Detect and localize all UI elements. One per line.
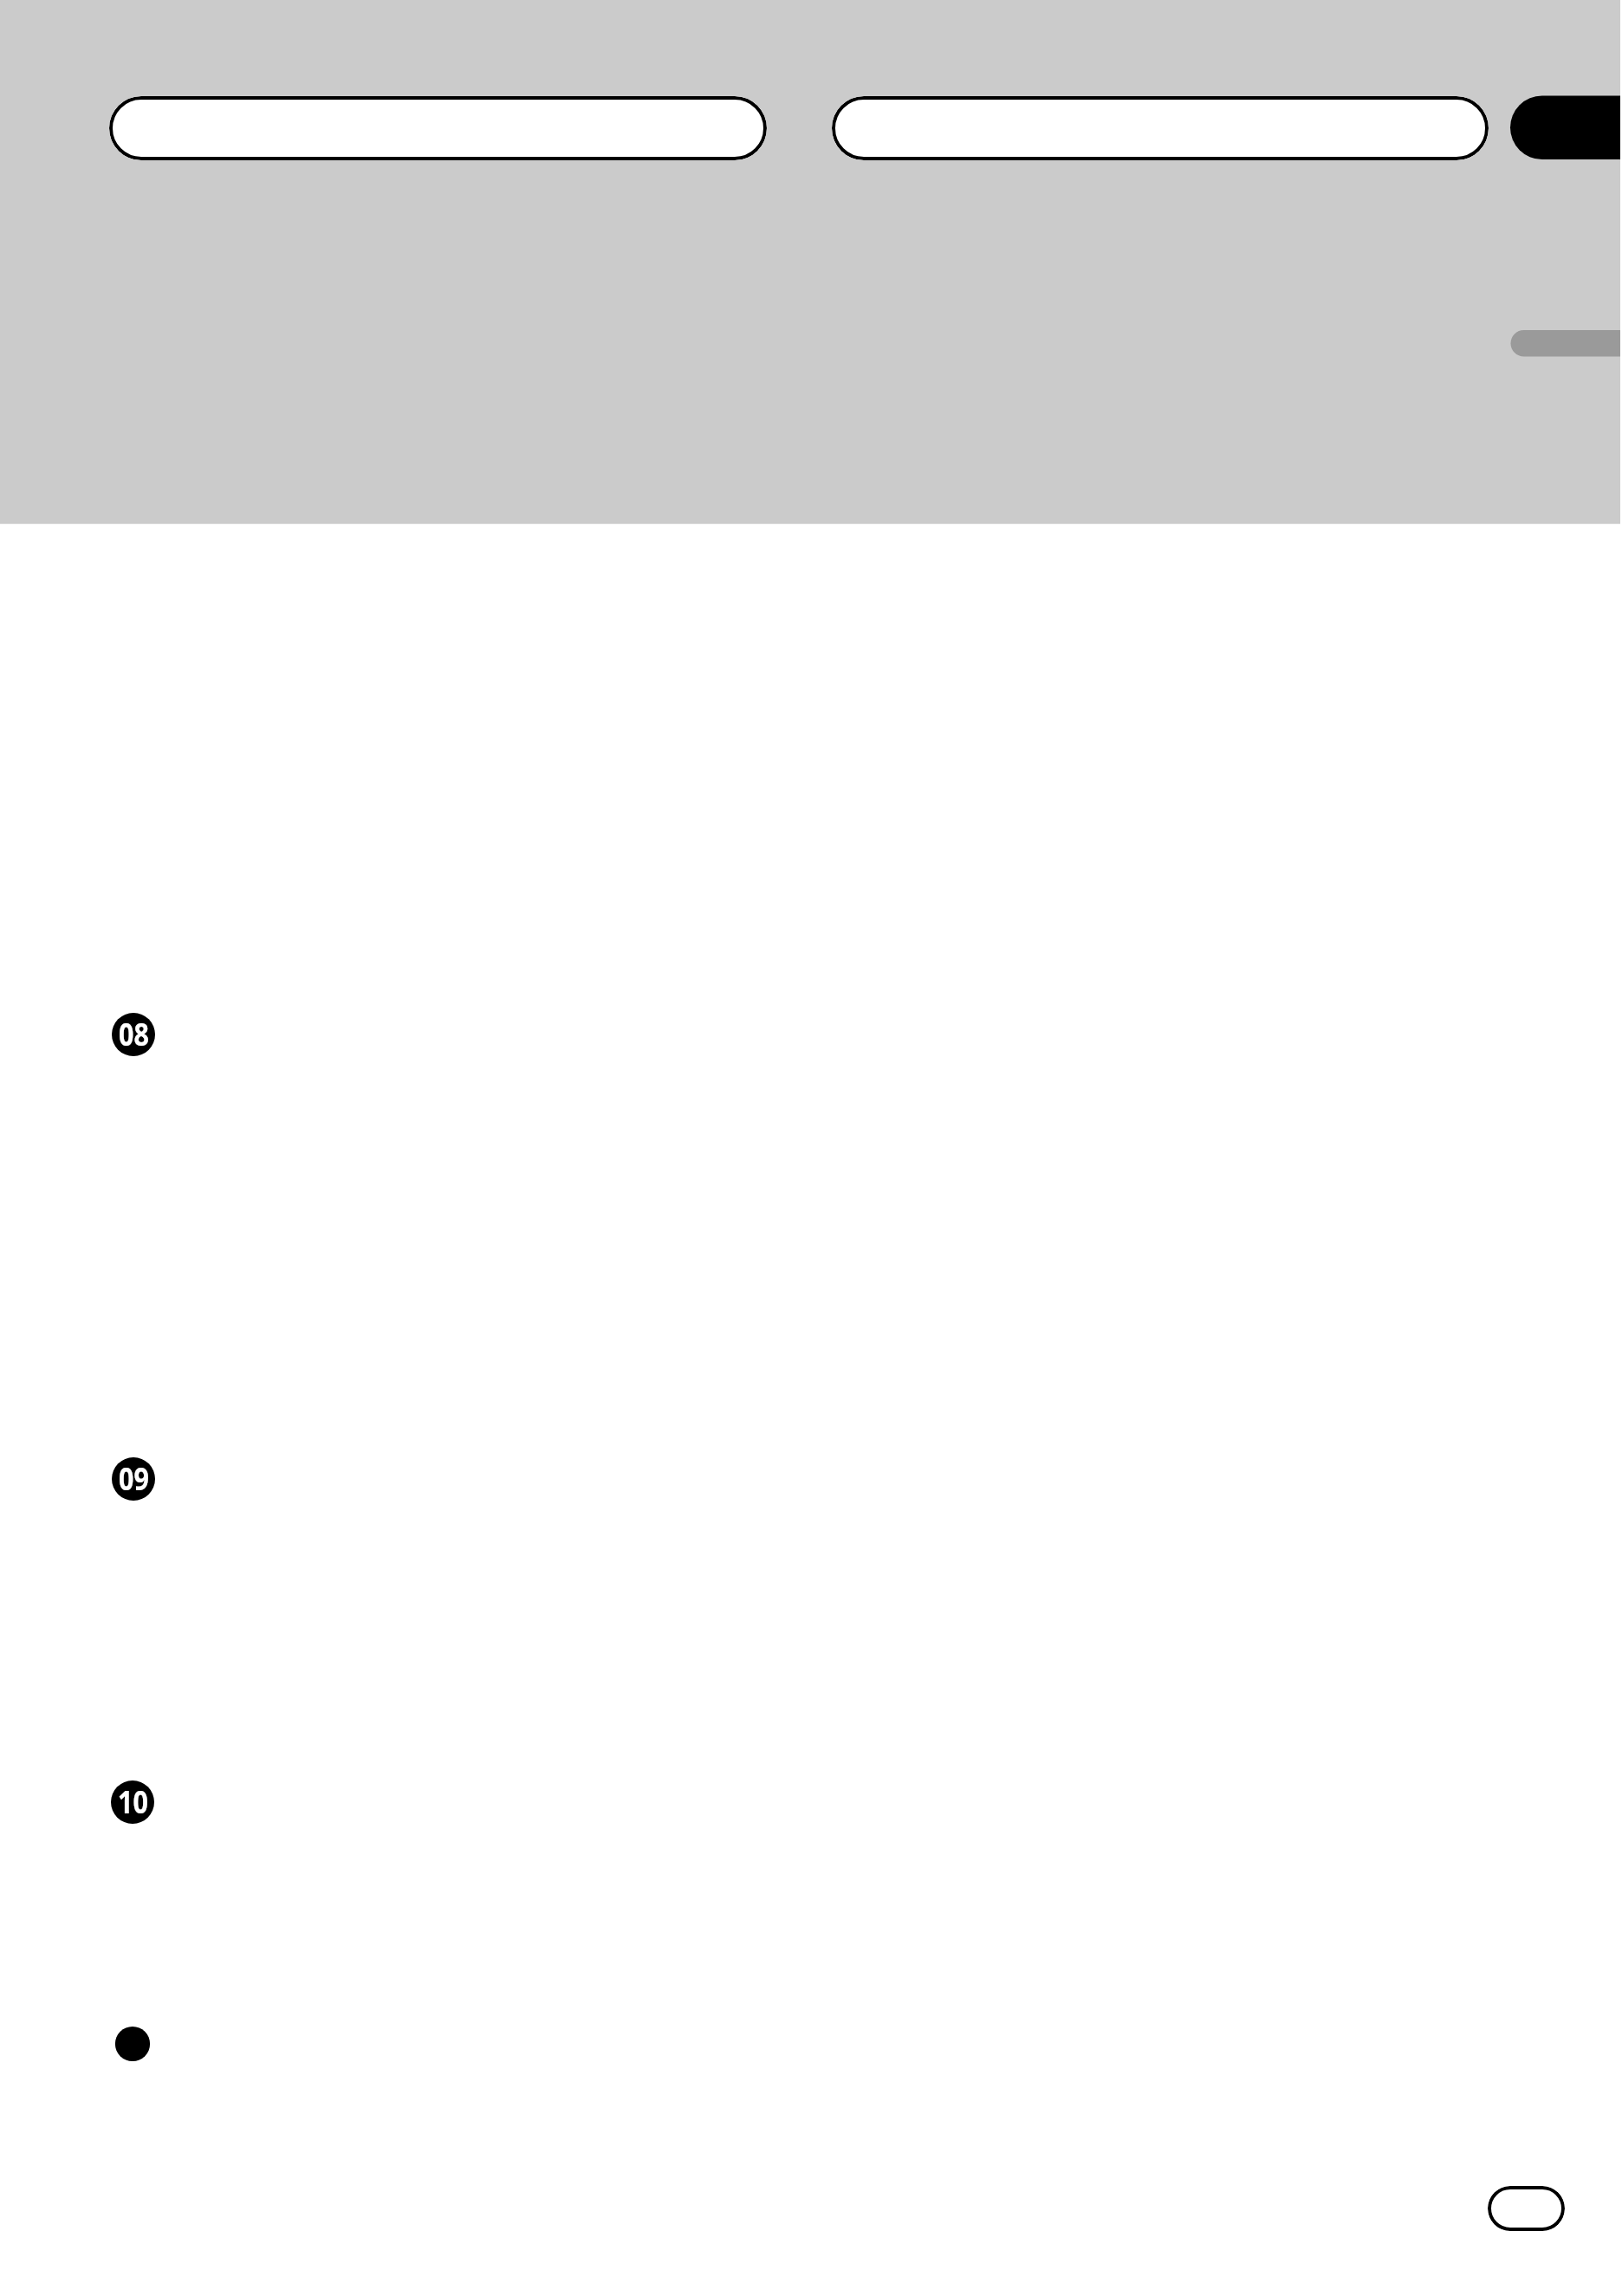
button[interactable]: Page number: [1488, 2186, 1565, 2231]
button[interactable]: Section heading, right column: [832, 96, 1489, 160]
button[interactable]: Section heading, left column: [109, 96, 767, 160]
staticText: 08: [118, 1014, 149, 1055]
staticText: 09: [118, 1458, 149, 1500]
button[interactable]: 09: [112, 1457, 155, 1501]
button[interactable]: 08: [112, 1013, 155, 1056]
button[interactable]: 10: [111, 1780, 154, 1824]
staticText: 10: [118, 1781, 149, 1823]
